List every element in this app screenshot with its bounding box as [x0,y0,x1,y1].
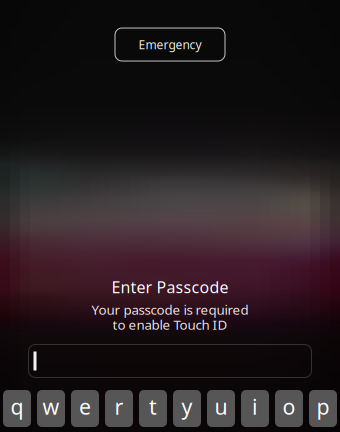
button[interactable]: e [71,390,99,427]
staticText: y [181,392,192,421]
button[interactable]: p [309,390,337,427]
staticText: e [79,392,91,421]
staticText: u [214,392,227,421]
button[interactable]: Emergency [115,28,225,61]
staticText: q [10,392,23,421]
staticText: to enable Touch ID [112,316,227,333]
staticText: r [114,392,123,421]
button[interactable]: w [37,390,65,427]
button[interactable]: t [139,390,167,427]
button[interactable]: r [105,390,133,427]
staticText: Enter Passcode [111,276,228,298]
staticText: i [252,392,258,421]
button[interactable]: u [207,390,235,427]
button[interactable]: o [275,390,303,427]
button[interactable]: i [241,390,269,427]
button[interactable]: y [173,390,201,427]
staticText: Your passcode is required [91,301,248,318]
staticText: t [149,392,157,421]
button[interactable]: q [3,390,31,427]
staticText: o [282,392,295,421]
staticText: w [42,392,59,421]
staticText: Emergency [138,36,201,52]
staticText: p [316,392,329,421]
